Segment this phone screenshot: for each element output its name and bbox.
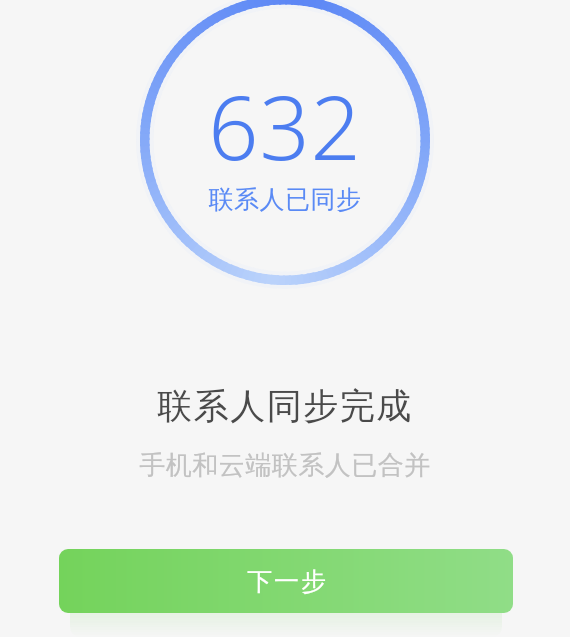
staticText: 632 — [0, 66, 570, 186]
staticText: 联系人同步完成 — [0, 384, 570, 428]
staticText: 联系人已同步 — [0, 184, 570, 215]
staticText: 手机和云端联系人已合并 — [0, 449, 570, 482]
staticText: 下一步 — [246, 566, 327, 597]
button[interactable]: 下一步 — [59, 549, 513, 613]
